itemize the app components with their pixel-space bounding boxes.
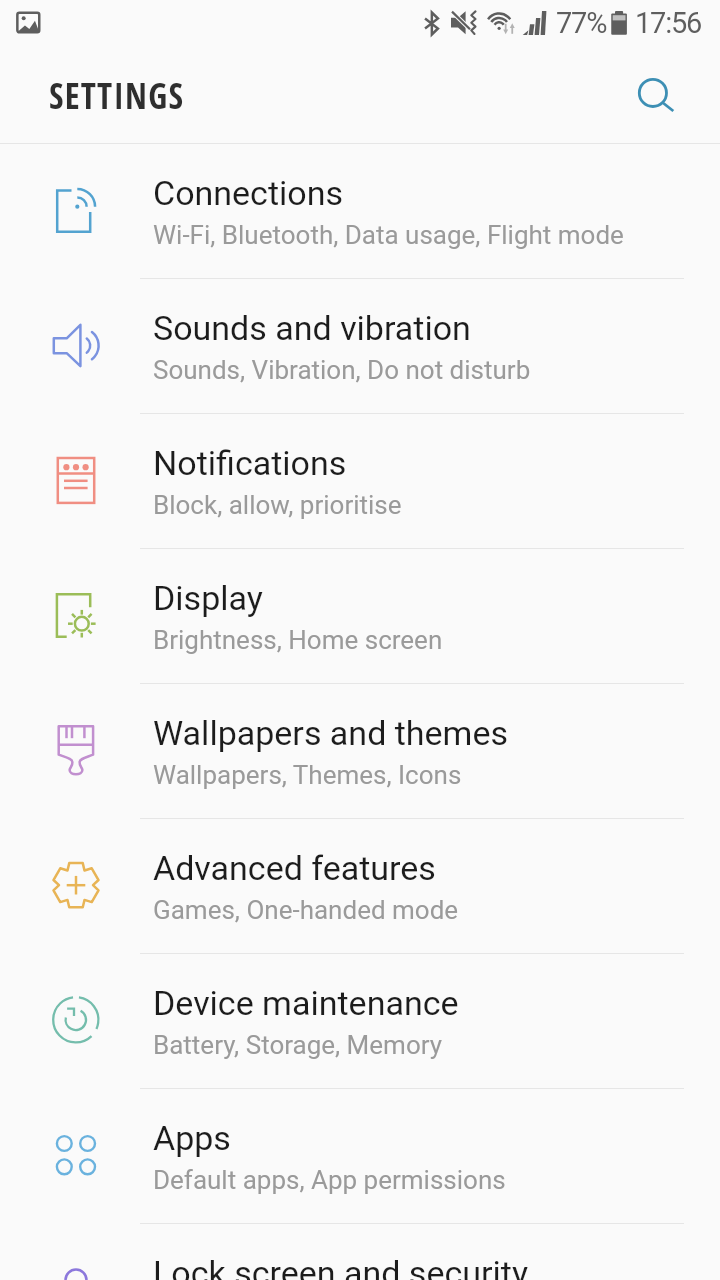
staticText: Default apps, App permissions (153, 1165, 506, 1195)
button[interactable]: Device maintenance (0, 953, 720, 1088)
staticText: Connections (153, 173, 344, 213)
staticText: Battery, Storage, Memory (153, 1030, 443, 1060)
staticText: 77% (556, 6, 607, 40)
staticText: Lock screen and security (153, 1253, 528, 1280)
staticText: Games, One-handed mode (153, 895, 459, 925)
staticText: Brightness, Home screen (153, 625, 443, 655)
staticText: Wi-Fi, Bluetooth, Data usage, Flight mod… (153, 220, 624, 250)
staticText: Sounds and vibration (153, 308, 471, 348)
staticText: Notifications (153, 443, 347, 483)
button[interactable]: Connections (0, 143, 720, 278)
staticText: Advanced features (153, 848, 436, 888)
button[interactable]: Search (613, 56, 697, 140)
staticText: Device maintenance (153, 983, 459, 1023)
staticText: Apps (153, 1118, 231, 1158)
staticText: Block, allow, prioritise (153, 490, 402, 520)
button[interactable]: Apps (0, 1088, 720, 1223)
staticText: Wallpapers, Themes, Icons (153, 760, 462, 790)
staticText: Sounds, Vibration, Do not disturb (153, 355, 531, 385)
button[interactable]: Wallpapers and themes (0, 683, 720, 818)
staticText: Display (153, 578, 263, 618)
staticText: 17:56 (635, 6, 702, 40)
button[interactable]: Advanced features (0, 818, 720, 953)
button[interactable]: Display (0, 548, 720, 683)
staticText: SETTINGS (49, 72, 185, 120)
button[interactable]: Notifications (0, 413, 720, 548)
button[interactable]: Lock screen and security (0, 1223, 720, 1280)
staticText: Wallpapers and themes (153, 713, 509, 753)
button[interactable]: Sounds and vibration (0, 278, 720, 413)
